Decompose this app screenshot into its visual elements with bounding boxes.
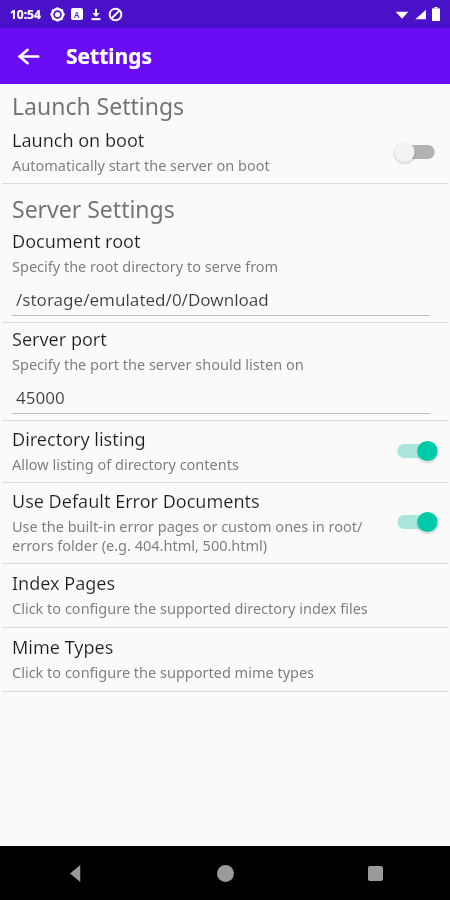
button[interactable]: Launch on boot [0, 122, 450, 183]
button[interactable]: Use Default Error Documents [0, 483, 450, 563]
staticText: Server port [12, 327, 107, 352]
button[interactable]: Server port [0, 323, 450, 420]
staticText: Server Settings [12, 193, 175, 224]
staticText: 45000 [16, 386, 65, 409]
button[interactable]: Directory listing [0, 421, 450, 482]
staticText: Mime Types [12, 635, 114, 660]
button[interactable]: Home [150, 846, 300, 900]
button[interactable]: Toggle on [392, 508, 440, 536]
staticText: Document root [12, 229, 141, 254]
staticText: Use Default Error Documents [12, 489, 260, 514]
button[interactable]: Toggle on [392, 437, 440, 465]
button[interactable]: Back [0, 28, 56, 84]
button[interactable]: Back [0, 846, 150, 900]
staticText: Specify the root directory to serve from [12, 256, 279, 276]
staticText: 10:54 [10, 6, 41, 22]
staticText: Click to configure the supported directo… [12, 598, 368, 618]
staticText: /storage/emulated/0/Download [16, 288, 269, 311]
staticText: Index Pages [12, 571, 116, 596]
staticText: Click to configure the supported mime ty… [12, 662, 315, 682]
staticText: Directory listing [12, 427, 146, 452]
button[interactable]: Index Pages [0, 564, 450, 627]
staticText: Automatically start the server on boot [12, 155, 270, 175]
staticText: Specify the port the server should liste… [12, 354, 304, 374]
staticText: Launch on boot [12, 128, 145, 153]
staticText: Settings [66, 42, 153, 71]
staticText: Use the built-in error pages or custom o… [12, 516, 363, 555]
button[interactable]: Toggle off [392, 138, 440, 166]
staticText: Launch Settings [12, 90, 185, 121]
staticText: Allow listing of directory contents [12, 454, 239, 474]
staticText: A [74, 9, 80, 20]
button[interactable]: Mime Types [0, 628, 450, 691]
button[interactable]: Recents [300, 846, 450, 900]
button[interactable]: Document root [0, 225, 450, 322]
